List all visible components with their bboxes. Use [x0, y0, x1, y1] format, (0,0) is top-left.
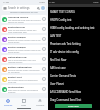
button[interactable]: Drag Command Send Test	[48, 95, 100, 103]
button[interactable]: Router Number	[1, 35, 47, 43]
button[interactable]: Account	[32, 98, 48, 107]
other: More info	[42, 67, 46, 71]
staticText: Carrier Demand Tests	[50, 74, 76, 77]
staticText: Extra tools for testing the hardware mod…	[8, 89, 41, 93]
staticText: 11:08	[3, 1, 9, 4]
staticText: Advanced Launch	[8, 16, 29, 19]
button[interactable]: SAR test case	[48, 63, 100, 71]
button[interactable]: SMART TEST CONFIG	[48, 7, 100, 15]
staticText: Display the router number used by the ac…	[8, 49, 41, 53]
other: Menu	[3, 6, 7, 10]
staticText: IT adv device info config	[50, 50, 79, 53]
button[interactable]: LAN TEST	[48, 31, 100, 39]
staticText: settings suggestions for you	[10, 11, 38, 14]
button[interactable]: Battery optimization	[1, 65, 47, 73]
button[interactable]: HIBN config loading and activing test	[48, 23, 100, 31]
staticText: SAR test case	[50, 66, 66, 69]
button[interactable]: Carrier Demand Tests	[48, 71, 100, 79]
button[interactable]: Red Test Now	[48, 55, 100, 63]
other: More info	[42, 47, 46, 51]
button[interactable]: Apps	[16, 98, 32, 107]
button[interactable]: START TEST	[55, 104, 92, 108]
button[interactable]: Restart Test	[1, 75, 47, 83]
staticText: START TEST	[68, 105, 79, 108]
staticText: HIBN config loading and activing test	[50, 26, 95, 29]
button[interactable]: Settings	[0, 98, 16, 107]
staticText: Restart Test	[8, 76, 22, 79]
other: More info	[42, 57, 46, 61]
staticText: See all the notifications you have recei…	[8, 59, 41, 63]
staticText: Display the router number used by the ac…	[8, 39, 41, 43]
button[interactable]: IT adv device info config	[48, 47, 100, 55]
staticText: Apps	[21, 104, 27, 107]
staticText: Run a quick restart and diagnostics cycl…	[8, 79, 41, 83]
staticText: Limit the information shared with other …	[8, 29, 41, 33]
button[interactable]: User Planet	[48, 79, 100, 87]
other: More info	[42, 37, 46, 41]
button[interactable]: Notification Log	[1, 55, 47, 63]
staticText: Multifunction	[8, 86, 24, 89]
staticText: User Planet	[50, 82, 64, 85]
staticText: 100%	[93, 1, 99, 4]
button[interactable]: Router Number	[1, 45, 47, 53]
staticText: 100%	[39, 1, 45, 4]
other: More info	[42, 77, 46, 81]
other: More info	[42, 27, 46, 31]
staticText: This advanced mode adds extra launch opt…	[8, 19, 41, 23]
other: More info	[42, 87, 46, 91]
staticText: Restricted Info	[8, 26, 26, 29]
staticText: Battery optimization	[8, 66, 32, 69]
staticText: Account	[36, 104, 45, 107]
staticText: HiVIPS Config test	[50, 18, 72, 21]
button[interactable]: Advanced Launch	[1, 15, 47, 23]
staticText: Router Number	[8, 36, 26, 39]
staticText: Router Number	[8, 46, 26, 49]
other: More info	[42, 17, 46, 21]
button[interactable]: AF/LCD/BRAND Send Now	[48, 87, 100, 95]
other: Account	[41, 6, 45, 10]
button[interactable]: HiVIPS Config test	[48, 15, 100, 23]
staticText: Drag Command Send Test	[50, 98, 82, 101]
staticText: Search in settings	[8, 6, 30, 10]
staticText: LAN TEST	[50, 34, 62, 37]
staticText: Phantom adv Test Setting	[50, 42, 81, 45]
staticText: SMART TEST CONFIG	[50, 10, 75, 13]
staticText: Settings	[4, 104, 13, 107]
staticText: Notification Log	[8, 56, 27, 59]
button[interactable]: Multifunction	[1, 85, 47, 93]
button[interactable]: Phantom adv Test Setting	[48, 39, 100, 47]
other: Search	[37, 7, 40, 10]
staticText: Improve standby power consumption on thi…	[8, 69, 41, 73]
staticText: 11:08	[49, 1, 55, 4]
staticText: AF/LCD/BRAND Send Now	[50, 90, 81, 93]
button[interactable]: Restricted Info	[1, 25, 47, 33]
button[interactable]: Menu	[2, 5, 46, 11]
staticText: Red Test Now	[50, 58, 67, 61]
